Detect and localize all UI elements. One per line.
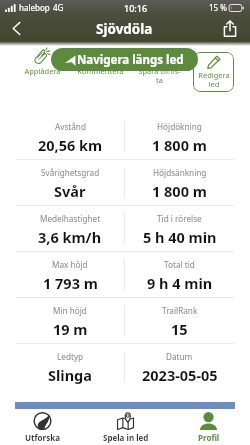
button[interactable]: Redigera led <box>193 52 234 92</box>
staticText: Applådera <box>24 66 61 76</box>
button[interactable]: Spela in led <box>84 409 167 445</box>
staticText: Utforska <box>25 432 60 443</box>
staticText: 20,56 km <box>38 135 103 155</box>
staticText: Kommentera <box>77 66 124 76</box>
staticText: Svårighetsgrad <box>41 167 100 178</box>
staticText: 2023-05-05 <box>142 365 218 385</box>
button[interactable]: Navigera längs led <box>51 48 198 71</box>
button[interactable]: Back <box>0 15 32 42</box>
staticText: Höjdökning <box>157 121 202 132</box>
staticText: Redigera led <box>198 70 230 90</box>
staticText: 15 % <box>209 2 227 13</box>
staticText: Avstånd <box>55 121 86 132</box>
staticText: Höjdsänkning <box>153 167 207 178</box>
button[interactable]: Share <box>210 15 250 42</box>
staticText: Tid i rörelse <box>157 213 202 224</box>
staticText: 5 h 40 min <box>143 227 217 247</box>
button[interactable]: Profil <box>167 409 250 445</box>
staticText: Navigera längs led <box>77 52 184 68</box>
button[interactable]: Applådera <box>13 46 71 90</box>
staticText: halebop <box>19 2 50 13</box>
staticText: Profil <box>198 432 220 443</box>
staticText: 1 800 m <box>152 135 207 155</box>
staticText: Max höjd <box>52 259 88 270</box>
staticText: Datum <box>166 351 193 362</box>
staticText: 1 793 m <box>43 273 98 293</box>
staticText: Total tid <box>164 259 195 270</box>
staticText: 1 800 m <box>152 181 207 201</box>
staticText: 3,6 km/h <box>38 227 102 247</box>
staticText: Spara till lis- ta <box>138 66 181 86</box>
staticText: 10:16 <box>124 2 148 14</box>
staticText: Svår <box>54 181 86 201</box>
staticText: Slinga <box>48 365 92 385</box>
button[interactable]: Utforska <box>0 409 84 445</box>
staticText: TrailRank <box>162 305 198 316</box>
staticText: Ledtyp <box>57 351 84 362</box>
staticText: Sjövdöla <box>96 20 153 38</box>
staticText: Spela in led <box>103 432 149 443</box>
staticText: 19 m <box>53 319 88 339</box>
staticText: 15 <box>171 319 188 339</box>
button[interactable]: Spara till lis- ta <box>130 46 189 90</box>
staticText: 4G <box>53 2 64 13</box>
staticText: Medelhastighet <box>40 213 101 224</box>
staticText: Min höjd <box>53 305 87 316</box>
staticText: 9 h 4 min <box>147 273 213 293</box>
button[interactable]: Kommentera <box>71 46 130 90</box>
